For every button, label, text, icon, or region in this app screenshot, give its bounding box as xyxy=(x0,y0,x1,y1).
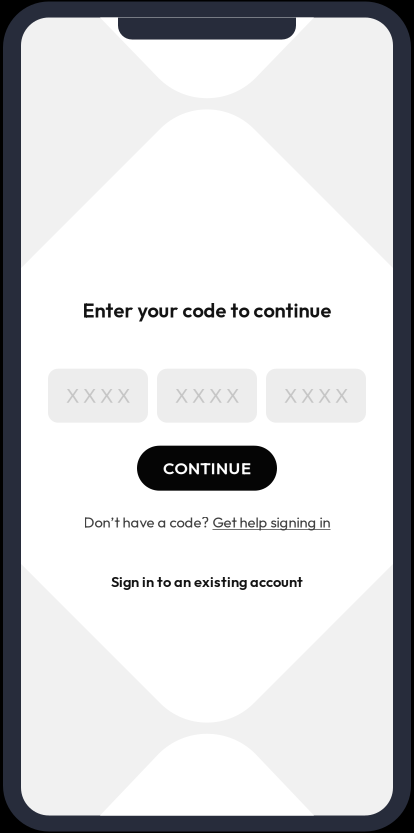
button[interactable]: Code group xyxy=(157,369,257,423)
staticText: CONTINUE xyxy=(163,458,251,479)
staticText: Enter your code to continue xyxy=(82,297,331,323)
button[interactable]: Code group xyxy=(266,369,366,423)
button[interactable]: CONTINUE xyxy=(137,446,277,491)
staticText: X X X X xyxy=(284,383,348,408)
button[interactable]: Sign in to an existing account xyxy=(111,572,303,591)
staticText: Get help signing in xyxy=(212,513,330,531)
button[interactable]: Code group xyxy=(48,369,148,423)
staticText: Don’t have a code? xyxy=(83,513,208,531)
staticText: X X X X xyxy=(66,383,130,408)
button[interactable]: Get help signing in xyxy=(212,513,330,531)
staticText: Sign in to an existing account xyxy=(111,572,303,591)
staticText: X X X X xyxy=(175,383,239,408)
